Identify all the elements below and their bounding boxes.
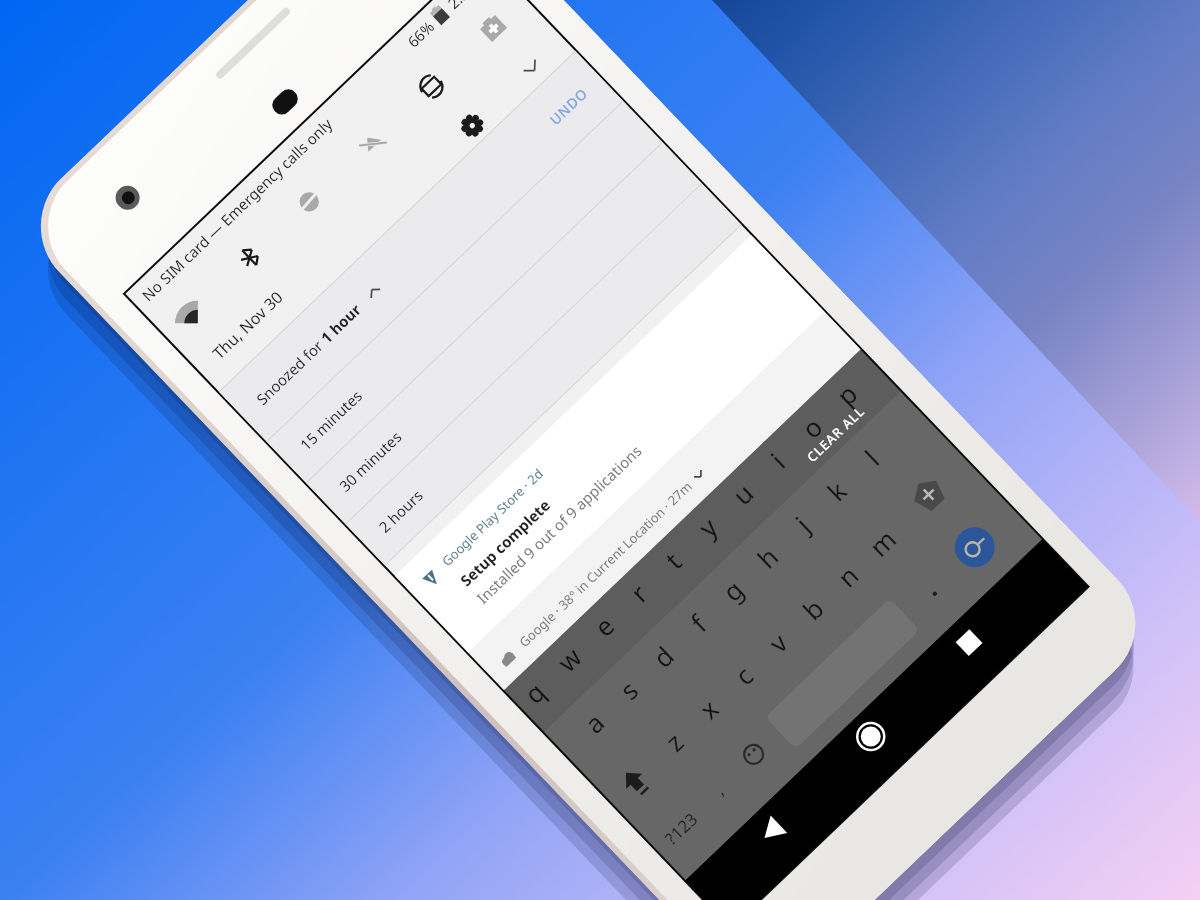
staticText: l (857, 442, 886, 472)
staticText: w (549, 639, 589, 679)
staticText: f (683, 607, 713, 639)
staticText: s (612, 672, 645, 706)
staticText: 2:2 (443, 0, 473, 13)
staticText: g (714, 572, 750, 608)
staticText: Snoozed for (252, 333, 330, 409)
button[interactable]: Back (739, 794, 820, 876)
staticText: p (828, 376, 864, 412)
staticText: UNDO (545, 83, 592, 129)
staticText: u (724, 475, 761, 512)
staticText: o (794, 409, 829, 445)
staticText: 30 minutes (335, 426, 406, 495)
staticText: e (586, 608, 621, 644)
button[interactable]: Auto rotate (412, 67, 450, 106)
button[interactable]: Collapse (522, 58, 542, 78)
button[interactable]: Home (836, 702, 917, 783)
button[interactable]: Settings (457, 110, 488, 141)
staticText: 66% (403, 16, 438, 51)
staticText: a (576, 705, 611, 740)
button[interactable]: 30 minutes (306, 142, 701, 524)
staticText: Installed 9 out of 9 applications (472, 440, 646, 607)
staticText: v (761, 625, 795, 660)
staticText: h (749, 538, 786, 575)
staticText: b (795, 591, 830, 627)
staticText: 2 hours (374, 485, 427, 537)
staticText: c (727, 658, 760, 692)
staticText: , (709, 780, 729, 800)
staticText: 1 hour (316, 299, 365, 347)
staticText: i (763, 445, 792, 475)
staticText: j (787, 508, 817, 538)
staticText: m (861, 522, 903, 564)
staticText: 15 minutes (295, 385, 366, 454)
button[interactable]: CLEAR ALL (794, 392, 878, 475)
staticText: r (622, 576, 654, 609)
button[interactable]: Recent apps (934, 608, 1015, 689)
staticText: CLEAR ALL (803, 402, 869, 466)
staticText: n (829, 557, 866, 594)
button[interactable]: Google · 38° in Current Location · 27m (468, 312, 860, 690)
staticText: Setup complete (456, 495, 554, 590)
staticText: t (657, 544, 688, 576)
button[interactable]: Snoozed for (219, 52, 623, 441)
staticText: q (516, 674, 552, 711)
staticText: y (690, 509, 725, 544)
staticText: k (819, 473, 853, 508)
staticText: x (691, 691, 725, 726)
staticText: Google · 38° in Current Location · 27m (515, 477, 696, 651)
staticText: Thu, Nov 30 (208, 286, 288, 364)
button[interactable]: 2 hours (345, 183, 741, 565)
staticText: z (657, 724, 691, 758)
staticText: Google Play Store · 2d (438, 464, 547, 570)
button[interactable]: Google Play Store · 2d (395, 235, 825, 652)
staticText: ?123 (660, 807, 702, 849)
button[interactable]: 15 minutes (266, 101, 662, 482)
staticText: No SIM card — Emergency calls only (137, 114, 336, 305)
staticText: d (645, 638, 681, 675)
